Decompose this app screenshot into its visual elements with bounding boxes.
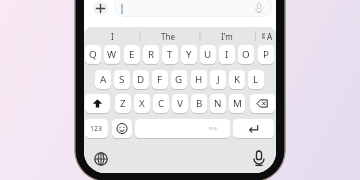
button[interactable]: E [124,45,140,64]
staticText: L [253,73,259,86]
button[interactable] [250,94,275,113]
staticText: A [100,73,107,86]
staticText: INIS [209,126,217,131]
button[interactable]: C [153,94,169,113]
staticText: A [267,31,273,42]
button[interactable]: O [238,45,254,64]
button[interactable]: Q [85,45,101,64]
button[interactable]: N [210,94,226,113]
button[interactable]: The [145,29,191,43]
staticText: B [196,97,203,110]
staticText: H [195,73,203,86]
button[interactable]: R [143,45,159,64]
button[interactable]: Y [181,45,197,64]
button[interactable]: P [258,45,274,64]
button[interactable]: X [134,94,150,113]
staticText: F [157,73,163,86]
staticText: N [214,97,222,110]
staticText: D [137,73,145,86]
staticText: Y [186,48,192,61]
button[interactable] [114,0,272,17]
staticText: O [242,48,250,61]
button[interactable]: T [162,45,178,64]
button[interactable]: I [219,45,235,64]
button[interactable]: Z [115,94,131,113]
staticText: Z [120,97,126,110]
staticText: T [167,48,173,61]
button[interactable]: I [90,29,135,43]
button[interactable]: F [152,70,168,89]
staticText: V [177,97,183,110]
button[interactable]: W [104,45,120,64]
staticText: The [161,31,175,42]
button[interactable]: A [260,30,273,42]
staticText: E [129,48,135,61]
button[interactable]: S [114,70,130,89]
staticText: P [263,48,269,61]
staticText: W [107,48,117,61]
button[interactable]: 123 [85,119,108,138]
staticText: X [139,97,145,110]
button[interactable]: J [210,70,226,89]
staticText: R [148,48,155,61]
button[interactable]: G [171,70,187,89]
button[interactable]: B [191,94,207,113]
staticText: G [175,73,183,86]
staticText: M [233,97,242,110]
button[interactable]: K [229,70,245,89]
button[interactable]: L [248,70,264,89]
button[interactable] [233,119,274,138]
button[interactable] [93,1,108,16]
staticText: J [217,73,220,86]
button[interactable] [85,94,110,113]
button[interactable]: D [133,70,149,89]
button[interactable]: I'm [204,29,250,43]
staticText: C [158,97,165,110]
staticText: S [119,73,125,86]
staticText: Q [89,48,97,61]
staticText: 123 [90,124,103,134]
staticText: I'm [221,31,233,42]
button[interactable]: INIS [135,119,230,138]
button[interactable]: A [95,70,111,89]
staticText: K [234,73,241,86]
button[interactable]: H [191,70,207,89]
button[interactable]: U [200,45,216,64]
staticText: I [111,31,114,42]
staticText: I [225,48,229,61]
button[interactable] [112,119,132,138]
staticText: U [204,48,212,61]
button[interactable]: V [172,94,188,113]
button[interactable]: M [229,94,245,113]
button[interactable] [248,148,269,169]
button[interactable] [91,149,111,169]
